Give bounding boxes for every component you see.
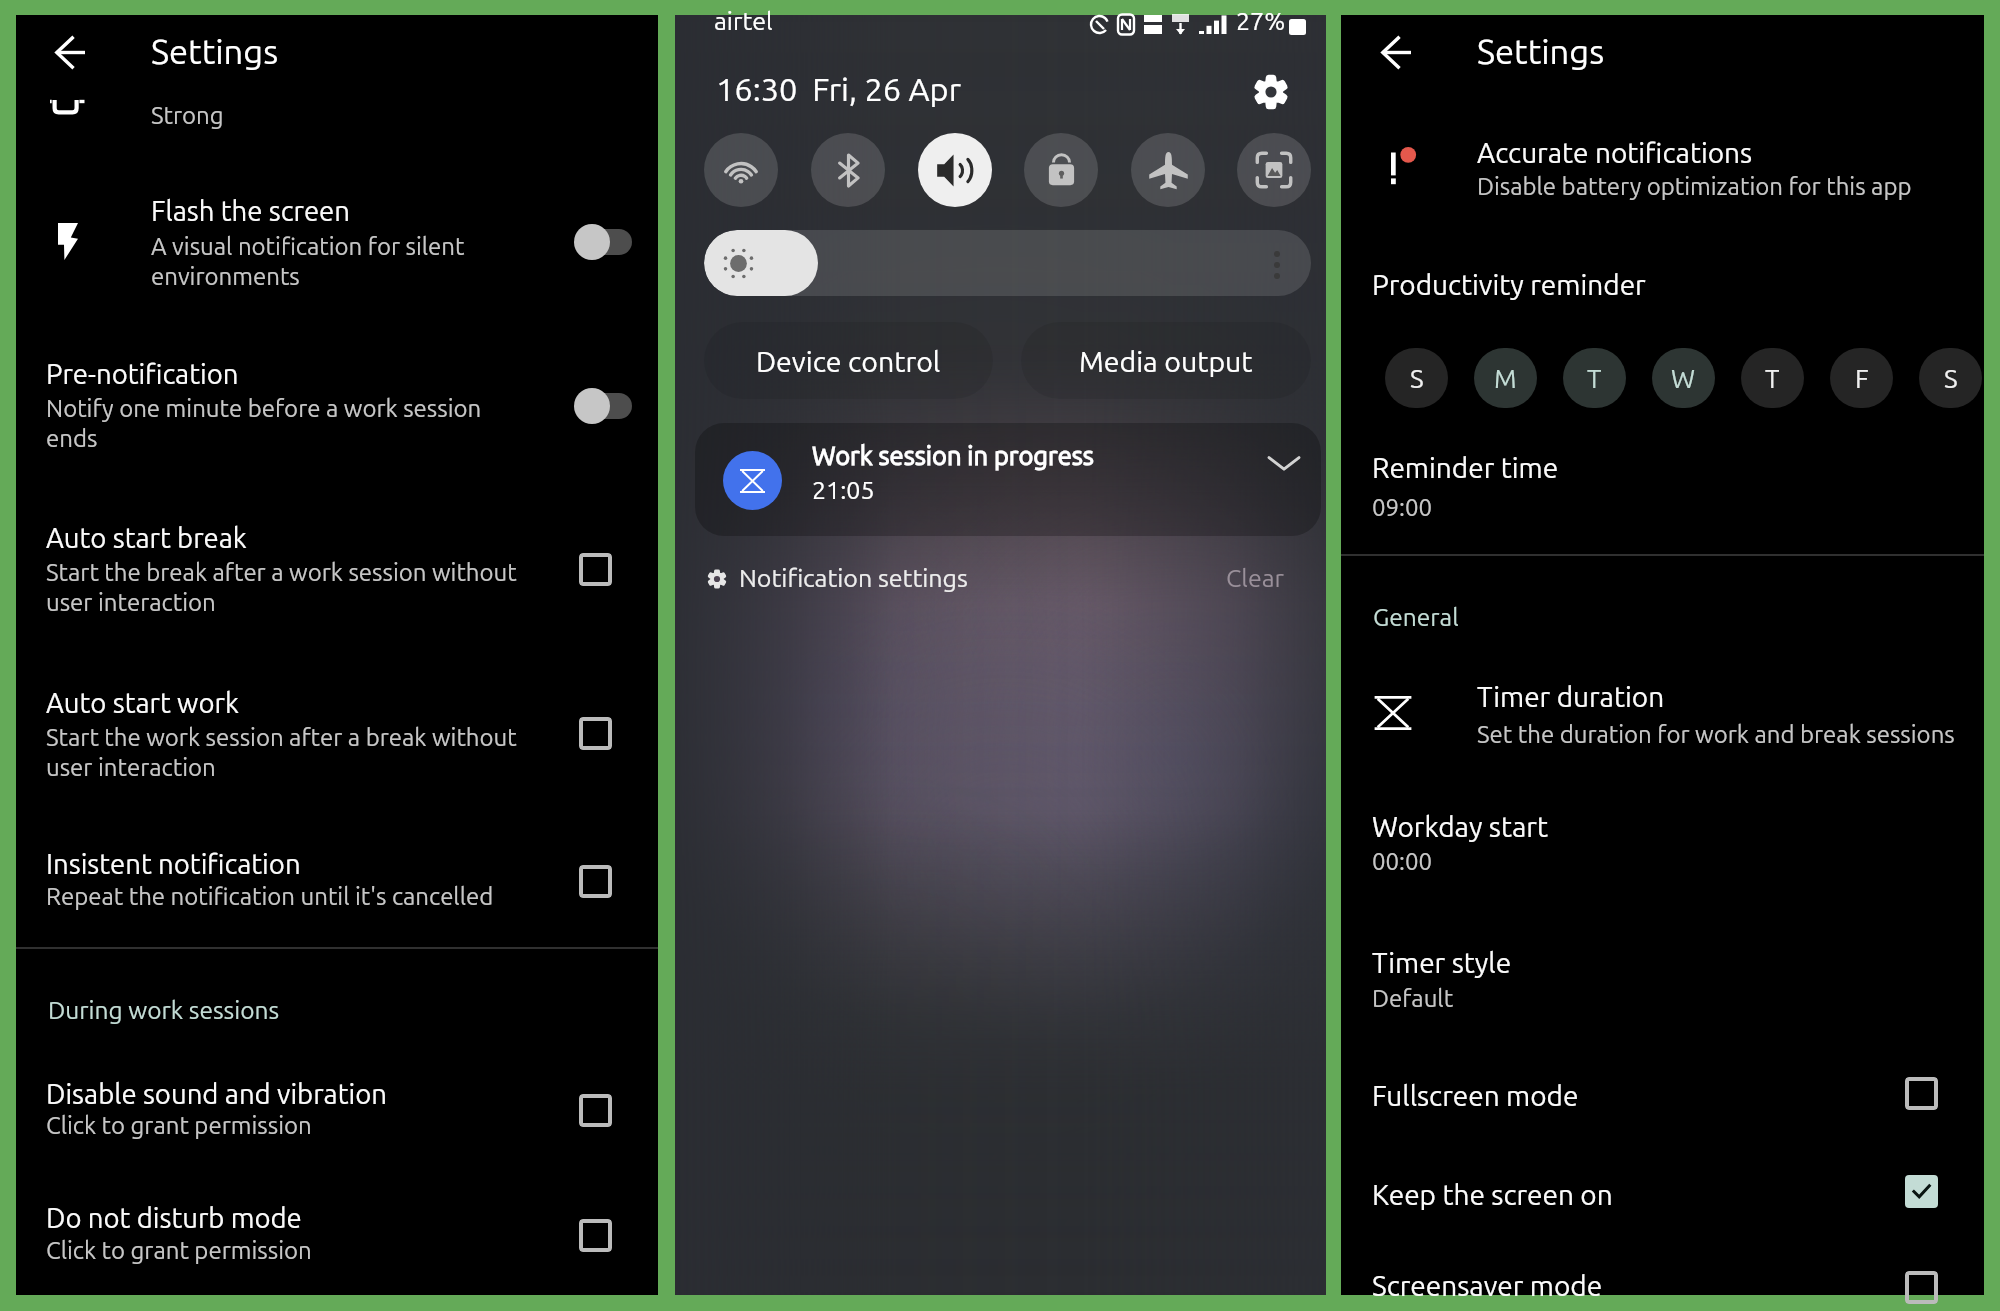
button[interactable]: Unchecked bbox=[569, 707, 621, 759]
button[interactable]: Unchecked bbox=[1895, 1067, 1947, 1119]
staticText: Pre-notification bbox=[46, 358, 239, 389]
button[interactable]: Work session in progress bbox=[695, 423, 1321, 536]
staticText: During work sessions bbox=[48, 996, 280, 1023]
button[interactable]: Smart capture bbox=[1237, 133, 1311, 207]
staticText: Start the break after a work session wit… bbox=[46, 559, 517, 616]
staticText: Auto start work bbox=[46, 687, 239, 718]
staticText: 09:00 bbox=[1372, 494, 1433, 521]
staticText: Insistent notification bbox=[46, 848, 301, 879]
staticText: Settings bbox=[151, 32, 279, 71]
button[interactable]: Sound bbox=[918, 133, 992, 207]
staticText: Device control bbox=[756, 345, 941, 377]
staticText: 00:00 bbox=[1372, 848, 1433, 875]
staticText: Accurate notifications bbox=[1477, 137, 1753, 168]
button[interactable]: Unchecked bbox=[569, 1209, 621, 1261]
button[interactable]: Checked bbox=[1895, 1165, 1947, 1217]
button[interactable]: Brightness bbox=[704, 230, 1311, 296]
staticText: Timer style bbox=[1372, 947, 1512, 978]
staticText: Click to grant permission bbox=[46, 1112, 312, 1139]
staticText: 16:30 Fri, 26 Apr bbox=[716, 71, 961, 107]
button[interactable]: Unchecked bbox=[569, 543, 621, 595]
button[interactable]: Device control bbox=[704, 322, 993, 399]
button[interactable]: Clear bbox=[1226, 559, 1297, 597]
staticText: Repeat the notification until it's cance… bbox=[46, 883, 494, 910]
button[interactable]: T bbox=[1741, 348, 1804, 408]
button[interactable]: Notification settings bbox=[705, 559, 957, 597]
button[interactable]: Media output bbox=[1021, 322, 1311, 399]
staticText: Flash the screen bbox=[151, 195, 350, 226]
staticText: Timer duration bbox=[1477, 681, 1665, 712]
button[interactable]: F bbox=[1830, 348, 1893, 408]
staticText: Fullscreen mode bbox=[1372, 1080, 1579, 1111]
staticText: Notify one minute before a work session … bbox=[46, 395, 482, 452]
button[interactable]: Screen lock bbox=[1024, 133, 1098, 207]
staticText: Start the work session after a break wit… bbox=[46, 724, 517, 781]
button[interactable]: Toggle bbox=[568, 216, 658, 268]
staticText: 21:05 bbox=[812, 476, 875, 504]
staticText: F bbox=[1855, 364, 1869, 393]
button[interactable]: M bbox=[1474, 348, 1537, 408]
staticText: Settings bbox=[1477, 32, 1605, 71]
staticText: Strong bbox=[151, 102, 224, 129]
staticText: Default bbox=[1372, 985, 1454, 1012]
staticText: M bbox=[1494, 364, 1517, 393]
button[interactable]: Flight mode bbox=[1131, 133, 1205, 207]
staticText: A visual notification for silent environ… bbox=[151, 233, 465, 290]
staticText: Screensaver mode bbox=[1372, 1270, 1603, 1301]
button[interactable]: Back bbox=[1370, 26, 1422, 78]
staticText: Do not disturb mode bbox=[46, 1202, 302, 1233]
button[interactable]: Back bbox=[44, 26, 96, 78]
staticText: Workday start bbox=[1372, 811, 1548, 842]
button[interactable]: Wi-Fi bbox=[704, 133, 778, 207]
staticText: General bbox=[1373, 603, 1459, 630]
button[interactable]: Unchecked bbox=[569, 855, 621, 907]
button[interactable]: Toggle bbox=[568, 380, 658, 432]
button[interactable]: T bbox=[1563, 348, 1626, 408]
staticText: Media output bbox=[1079, 345, 1253, 377]
button[interactable]: Unchecked bbox=[569, 1084, 621, 1136]
staticText: S bbox=[1944, 364, 1958, 393]
staticText: W bbox=[1671, 364, 1696, 393]
staticText: S bbox=[1410, 364, 1424, 393]
button[interactable]: Quick settings bbox=[1249, 70, 1293, 114]
staticText: Auto start break bbox=[46, 522, 247, 553]
staticText: 27% bbox=[1236, 7, 1286, 35]
staticText: Keep the screen on bbox=[1372, 1179, 1613, 1210]
staticText: Clear bbox=[1226, 564, 1285, 592]
staticText: airtel bbox=[714, 7, 773, 35]
staticText: Disable sound and vibration bbox=[46, 1078, 387, 1109]
button[interactable]: Bluetooth bbox=[811, 133, 885, 207]
button[interactable]: Unchecked bbox=[1895, 1261, 1947, 1311]
staticText: Click to grant permission bbox=[46, 1237, 312, 1264]
staticText: Work session in progress bbox=[812, 441, 1094, 470]
staticText: Notification settings bbox=[739, 564, 968, 592]
staticText: Set the duration for work and break sess… bbox=[1477, 721, 1955, 748]
button[interactable]: S bbox=[1385, 348, 1448, 408]
staticText: Disable battery optimization for this ap… bbox=[1477, 173, 1912, 200]
button[interactable]: W bbox=[1652, 348, 1715, 408]
staticText: Reminder time bbox=[1372, 452, 1559, 483]
staticText: Productivity reminder bbox=[1372, 269, 1646, 300]
button[interactable]: S bbox=[1919, 348, 1982, 408]
staticText: T bbox=[1765, 364, 1780, 393]
staticText: T bbox=[1587, 364, 1602, 393]
